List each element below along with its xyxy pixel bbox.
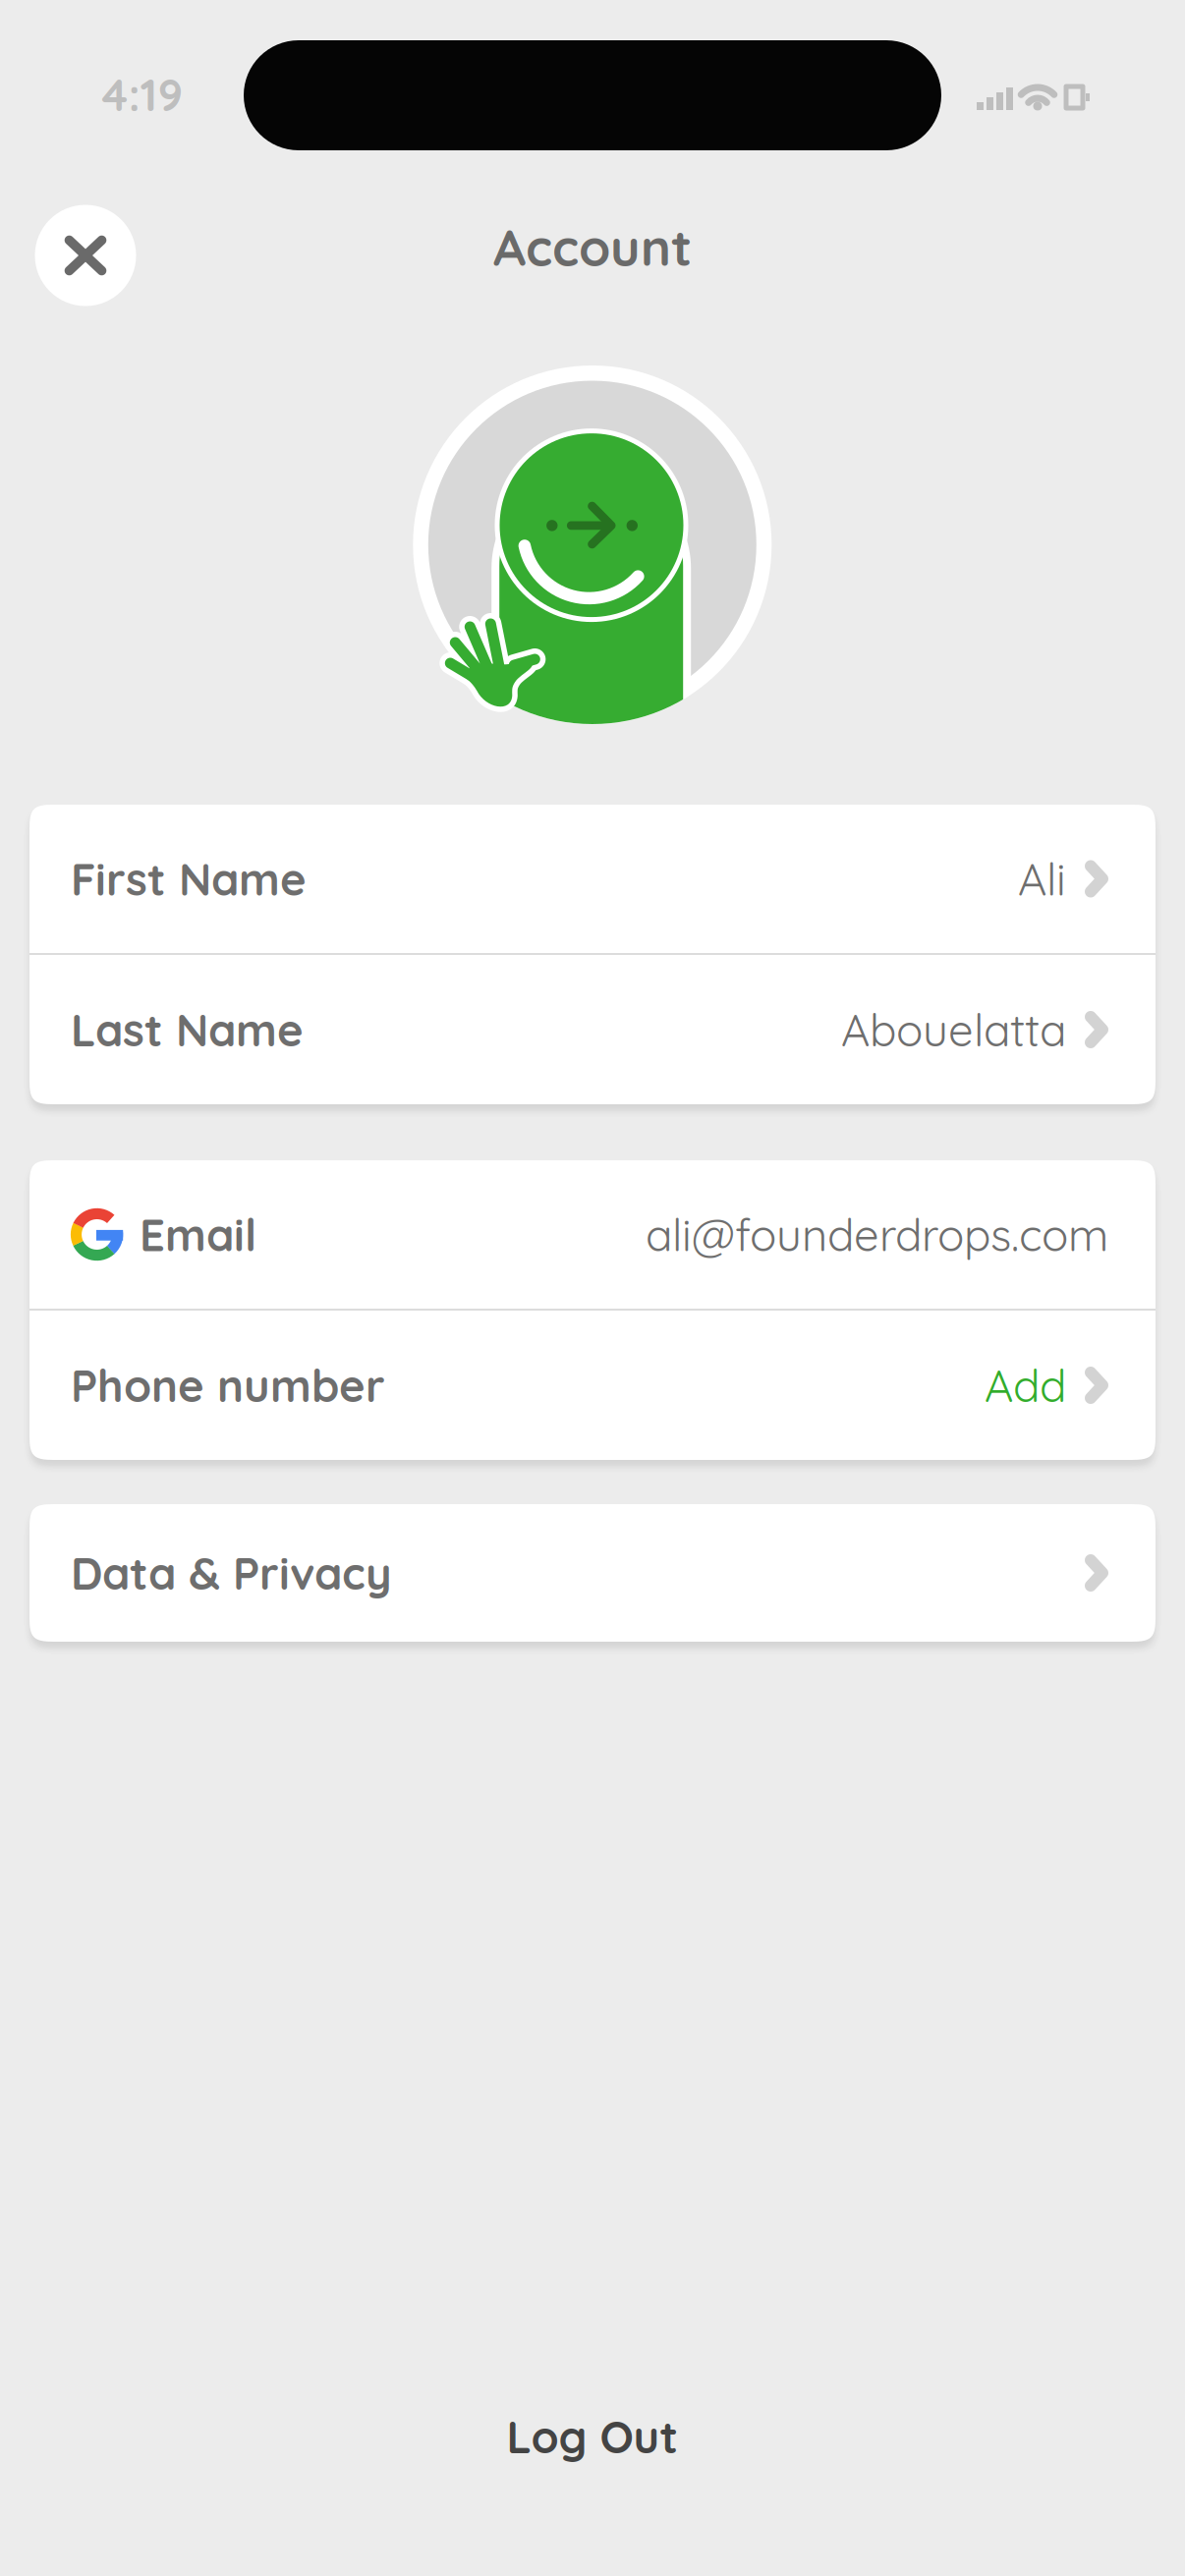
staticText: Data & Privacy	[71, 1545, 392, 1601]
staticText: ali@founderdrops.com	[646, 1207, 1108, 1262]
button[interactable]: Phone number	[29, 1311, 1156, 1460]
staticText: Abouelatta	[841, 1002, 1066, 1058]
staticText: Email	[140, 1207, 256, 1262]
staticText: Account	[493, 215, 692, 279]
button[interactable]: Close	[35, 205, 136, 306]
button[interactable]: First Name	[29, 805, 1156, 953]
button[interactable]: Data & Privacy	[29, 1504, 1156, 1642]
staticText: Phone number	[71, 1357, 385, 1413]
button[interactable]: Log Out	[386, 2378, 799, 2495]
staticText: 4:19	[102, 67, 183, 122]
staticText: First Name	[71, 851, 307, 907]
staticText: Add	[985, 1357, 1066, 1413]
button[interactable]: Email	[29, 1160, 1156, 1309]
button[interactable]: Last Name	[29, 955, 1156, 1104]
staticText: Ali	[1018, 851, 1066, 907]
staticText: Log Out	[507, 2409, 678, 2464]
staticText: Last Name	[71, 1002, 304, 1058]
